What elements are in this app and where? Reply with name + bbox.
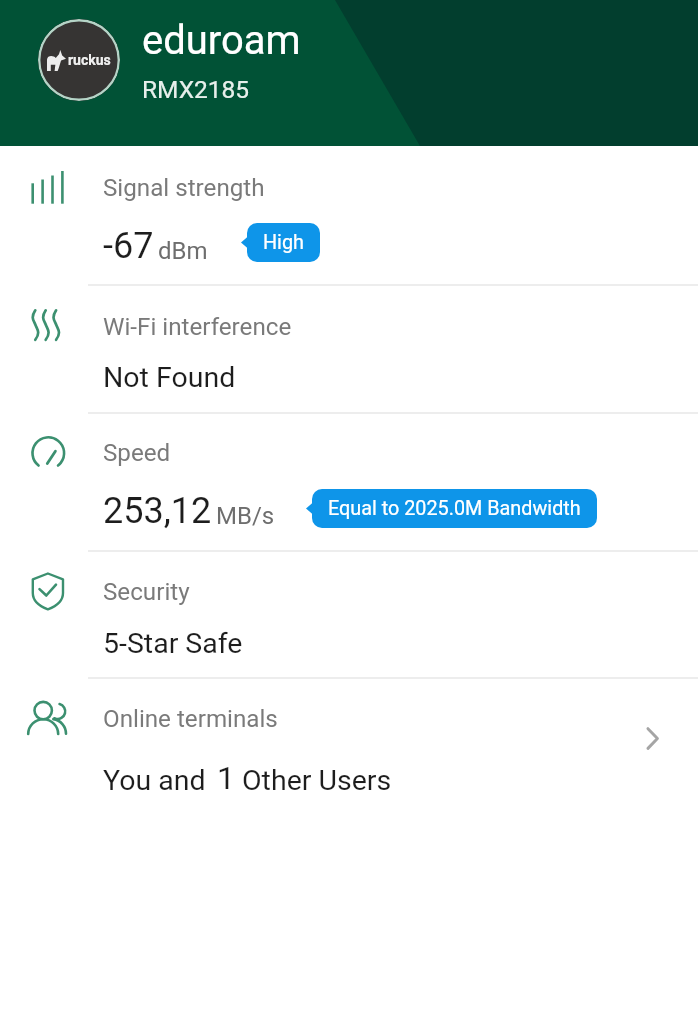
button[interactable]: Wi-Fi interference bbox=[0, 284, 698, 412]
staticText: High bbox=[263, 231, 304, 254]
staticText: 5-Star Safe bbox=[103, 627, 243, 660]
staticText: MB/s bbox=[216, 502, 275, 530]
staticText: RMX2185 bbox=[142, 75, 250, 104]
staticText: Equal to 2025.0M Bandwidth bbox=[328, 497, 581, 520]
staticText: 1 bbox=[217, 759, 235, 797]
staticText: eduroam bbox=[142, 17, 301, 64]
staticText: -67 bbox=[103, 225, 154, 267]
staticText: You and bbox=[103, 764, 206, 797]
button[interactable]: Signal strength bbox=[0, 146, 698, 284]
staticText: Online terminals bbox=[103, 705, 278, 733]
staticText: Wi-Fi interference bbox=[103, 313, 292, 341]
button[interactable]: Online terminals bbox=[0, 677, 698, 805]
staticText: Not Found bbox=[103, 361, 236, 394]
button[interactable]: Security bbox=[0, 550, 698, 677]
staticText: dBm bbox=[158, 237, 208, 265]
button[interactable]: Speed bbox=[0, 412, 698, 550]
button[interactable]: Online terminals details bbox=[626, 712, 678, 764]
staticText: ruckus bbox=[68, 52, 111, 68]
staticText: 253,12 bbox=[103, 490, 212, 532]
staticText: Signal strength bbox=[103, 174, 265, 202]
staticText: Other Users bbox=[242, 764, 392, 797]
staticText: Speed bbox=[103, 439, 171, 467]
staticText: Security bbox=[103, 578, 190, 606]
